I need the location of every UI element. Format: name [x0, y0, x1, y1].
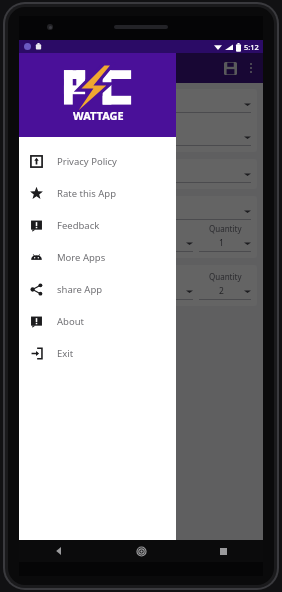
button[interactable]: More options [247, 61, 255, 75]
button[interactable]: share App [19, 273, 176, 305]
staticText: Quantity [209, 271, 242, 282]
staticText: More Apps [57, 251, 106, 264]
staticText: Privacy Policy [57, 155, 117, 168]
button[interactable]: Save [224, 62, 237, 75]
staticText: AMD Ryzen 7 1700 [31, 131, 105, 143]
button[interactable] [31, 234, 193, 252]
staticText: 2 [219, 285, 224, 297]
staticText: Exit [57, 347, 74, 360]
button[interactable]: More Apps [19, 241, 176, 273]
button[interactable]: Feedback [19, 209, 176, 241]
button[interactable]: Privacy Policy [19, 145, 176, 177]
button[interactable]: 1 [199, 234, 251, 252]
button[interactable]: Recent apps [213, 541, 233, 561]
button[interactable]: 2 [199, 282, 251, 300]
button[interactable] [31, 202, 251, 220]
button[interactable]: About [19, 305, 176, 337]
button[interactable]: Home [131, 541, 151, 561]
staticText: Feedback [57, 219, 100, 232]
staticText: Wattage Calculator [51, 61, 152, 76]
button[interactable]: AMD Ryzen 7 1700 [31, 128, 251, 146]
button[interactable] [31, 165, 251, 183]
staticText: 5:12 [244, 42, 259, 52]
button[interactable]: Rate this App [19, 177, 176, 209]
button[interactable] [31, 282, 193, 300]
staticText: 1 [219, 237, 224, 249]
staticText: About [57, 315, 84, 328]
staticText: Quantity [209, 223, 242, 234]
staticText: WATTAGE [73, 108, 124, 123]
button[interactable]: Exit [19, 337, 176, 369]
button[interactable] [31, 95, 251, 113]
button[interactable]: Back [49, 541, 69, 561]
staticText: Rate this App [57, 187, 117, 200]
staticText: share App [57, 283, 103, 296]
